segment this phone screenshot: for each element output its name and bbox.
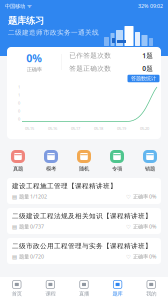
staticText: 05-17 <box>71 126 80 131</box>
staticText: 05-15 <box>25 126 34 131</box>
staticText: 中国移动 ᯤ <box>5 2 32 10</box>
staticText: 0 <box>18 100 20 106</box>
button[interactable]: 二级市政公用工程管理与实务【课程精讲班】 <box>7 238 161 264</box>
staticText: 首页 <box>12 290 22 297</box>
button[interactable]: 答题数统计 <box>127 75 159 82</box>
button[interactable]: 直播 <box>67 277 101 300</box>
button[interactable]: 随机 <box>67 150 100 172</box>
staticText: 课程 <box>45 290 55 297</box>
staticText: 题库练习 <box>8 15 44 26</box>
staticText: 0 <box>18 116 20 122</box>
staticText: 05-18 <box>94 126 103 131</box>
staticText: ♡ 正确率 0% <box>126 193 156 200</box>
staticText: 错题 <box>145 165 155 172</box>
staticText: 05-20 <box>140 126 149 131</box>
staticText: 我的 <box>146 290 156 297</box>
staticText: ▤ 题量 0/720 <box>12 253 44 260</box>
button[interactable]: 专项 <box>100 150 133 172</box>
button[interactable]: 首页 <box>0 277 34 300</box>
button[interactable]: 模考 <box>34 150 67 172</box>
staticText: ♡ 正确率 0% <box>126 253 156 260</box>
staticText: ♡ 正确率 0% <box>126 223 156 230</box>
staticText: 专项 <box>112 165 122 172</box>
staticText: 已作答题次数 <box>69 51 111 60</box>
button[interactable]: 题库 <box>101 277 134 300</box>
staticText: ▤ 题量 1/1202 <box>12 193 47 200</box>
button[interactable]: 我的 <box>134 277 168 300</box>
staticText: 模考 <box>46 165 56 172</box>
button[interactable]: 二级建设工程法规及相关知识【课程精讲班】 <box>7 208 161 234</box>
staticText: 答题正确次数 <box>69 64 111 72</box>
staticText: 真题 <box>13 165 23 172</box>
staticText: 答题数统计 <box>131 75 156 82</box>
staticText: ▤ 题量 0/737 <box>12 223 44 230</box>
button[interactable]: 课程 <box>34 277 67 300</box>
button[interactable]: 真题 <box>1 150 34 172</box>
button[interactable]: 建设工程施工管理【课程精讲班】 <box>7 178 161 204</box>
staticText: 二级建造师市政实务一通关线 <box>8 28 99 37</box>
staticText: 1题 <box>142 51 153 60</box>
staticText: 0 <box>18 108 20 114</box>
staticText: 题库 <box>113 290 123 297</box>
staticText: 正确率 <box>27 66 42 73</box>
staticText: 随机 <box>79 165 89 172</box>
button[interactable]: 错题 <box>133 150 166 172</box>
staticText: 05-19 <box>117 126 126 131</box>
staticText: 32% 09:02 <box>138 2 163 10</box>
staticText: 05-16 <box>48 126 57 131</box>
staticText: 建设工程施工管理【课程精讲班】 <box>12 182 117 190</box>
staticText: 二级建设工程法规及相关知识【课程精讲班】 <box>12 212 152 220</box>
staticText: 二级市政公用工程管理与实务【课程精讲班】 <box>12 242 152 250</box>
staticText: 1 <box>18 84 20 90</box>
staticText: 1 <box>18 92 20 98</box>
staticText: 0% <box>26 51 42 65</box>
staticText: 0题 <box>142 64 153 73</box>
staticText: 直播 <box>79 290 89 297</box>
